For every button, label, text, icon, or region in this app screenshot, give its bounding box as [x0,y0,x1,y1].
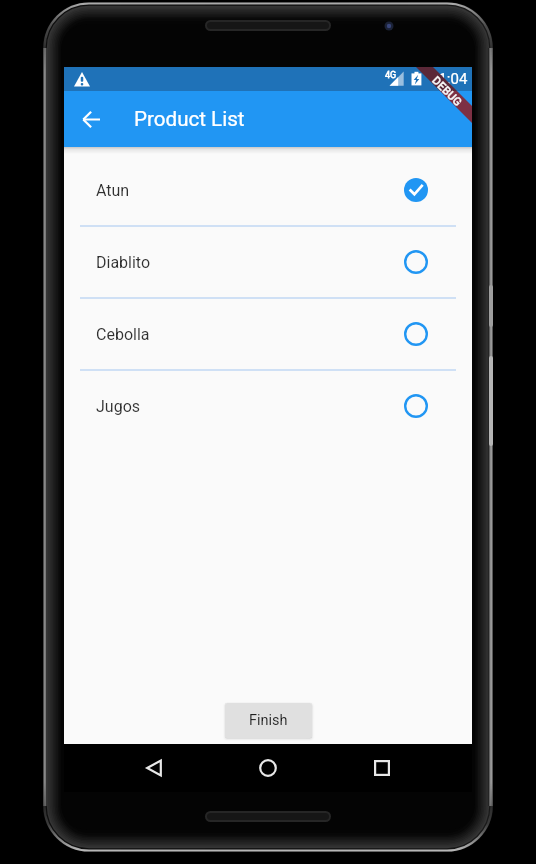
button[interactable]: Atun [64,155,472,225]
staticText: 4G [385,70,397,81]
button[interactable]: Cebolla [64,299,472,369]
button[interactable]: Diablito [64,227,472,297]
staticText: Atun [96,181,404,200]
staticText: 11:04 [430,70,468,88]
button[interactable]: Back [130,744,178,792]
button[interactable]: Jugos [64,371,472,441]
staticText: Diablito [96,253,404,272]
staticText: Finish [249,712,288,729]
staticText: Product List [134,107,245,131]
button[interactable]: Finish [225,703,312,738]
button[interactable]: Home [244,744,292,792]
button[interactable]: Back [72,100,110,138]
staticText: DEBUG [429,74,465,109]
staticText: Jugos [96,397,404,416]
button[interactable]: Recents [358,744,406,792]
staticText: Cebolla [96,325,404,344]
